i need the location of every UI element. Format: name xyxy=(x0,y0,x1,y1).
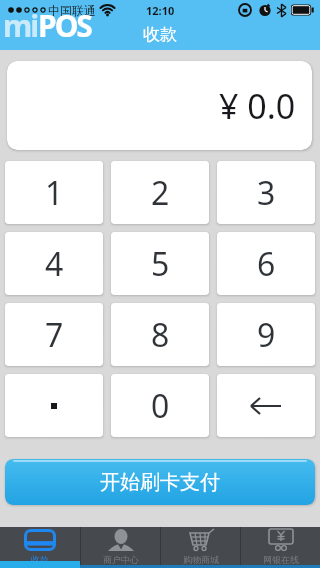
button[interactable]: 购物商城 xyxy=(161,527,240,568)
button[interactable]: 3 xyxy=(217,161,315,224)
button[interactable]: 0 xyxy=(111,374,209,437)
staticText: 1 xyxy=(45,171,64,215)
button[interactable]: 网银在线 xyxy=(241,527,320,568)
staticText: 中国联通 xyxy=(48,3,96,18)
button[interactable]: 5 xyxy=(111,232,209,295)
staticText: 3 xyxy=(257,171,276,215)
staticText: 商户中心 xyxy=(103,554,139,565)
button[interactable]: 收款 xyxy=(0,527,80,568)
staticText: 2 xyxy=(151,171,170,215)
staticText: 12:10 xyxy=(146,3,175,18)
staticText: 网银在线 xyxy=(263,554,299,565)
button[interactable]: 开始刷卡支付 xyxy=(5,459,315,505)
button[interactable]: 9 xyxy=(217,303,315,366)
staticText: 7 xyxy=(45,313,64,357)
button[interactable] xyxy=(5,374,103,437)
staticText: 5 xyxy=(151,242,170,286)
staticText: 收款 xyxy=(31,554,49,565)
staticText: 收款 xyxy=(143,24,177,45)
staticText: 开始刷卡支付 xyxy=(100,470,220,495)
staticText: ¥ 0.0 xyxy=(219,83,296,129)
button[interactable]: 7 xyxy=(5,303,103,366)
staticText: POS xyxy=(38,5,91,46)
button[interactable]: 2 xyxy=(111,161,209,224)
button[interactable] xyxy=(217,374,315,437)
button[interactable]: 6 xyxy=(217,232,315,295)
staticText: 购物商城 xyxy=(183,554,219,565)
button[interactable]: 8 xyxy=(111,303,209,366)
button[interactable]: 4 xyxy=(5,232,103,295)
button[interactable]: 1 xyxy=(5,161,103,224)
staticText: 9 xyxy=(257,313,276,357)
staticText: mi xyxy=(3,5,38,46)
staticText: 0 xyxy=(151,384,170,428)
staticText: 4 xyxy=(45,242,64,286)
staticText: 6 xyxy=(257,242,276,286)
button[interactable]: 商户中心 xyxy=(81,527,160,568)
staticText: 8 xyxy=(151,313,170,357)
